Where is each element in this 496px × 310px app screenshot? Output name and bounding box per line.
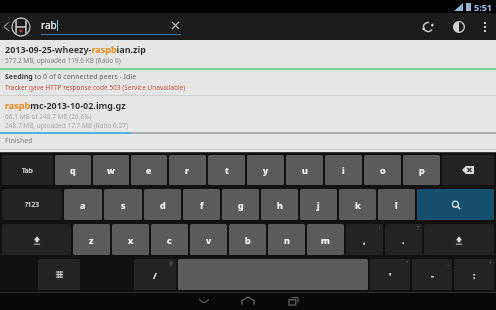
button[interactable]: Switch keyboard (38, 259, 80, 290)
button[interactable]: w (93, 155, 129, 185)
staticText: x (128, 234, 134, 246)
staticText: f (200, 199, 204, 211)
staticText: e (146, 164, 152, 176)
button[interactable]: @ (134, 259, 176, 290)
button[interactable]: l (378, 189, 415, 220)
staticText: ! (379, 225, 381, 232)
staticText: 2013-09-25-wheezy-raspbian.zip (5, 43, 146, 55)
button[interactable]: r (169, 155, 206, 185)
button[interactable]: q (55, 155, 91, 185)
button[interactable]: Shift (424, 224, 494, 255)
button[interactable]: o (364, 155, 401, 185)
staticText: g (238, 199, 244, 211)
staticText: : (473, 269, 476, 281)
button[interactable]: s (104, 189, 142, 220)
staticText: y (263, 164, 269, 176)
staticText: k (355, 199, 361, 211)
button[interactable]: d (144, 189, 181, 220)
button[interactable]: g (222, 189, 259, 220)
staticText: n (284, 234, 290, 246)
button[interactable]: “ (370, 259, 410, 290)
staticText: 248.7 MB, uploaded 17.7 MB (Ratio 0.27) (5, 121, 128, 130)
staticText: _ (447, 260, 450, 267)
staticText: s (121, 199, 126, 211)
button[interactable]: ? (385, 224, 422, 255)
staticText: Tab (22, 166, 33, 175)
button[interactable]: ?123 (2, 189, 62, 220)
staticText: m (321, 234, 330, 246)
staticText: t (225, 164, 229, 176)
button[interactable]: a (64, 189, 102, 220)
staticText: 5:51 (474, 1, 492, 13)
staticText: d (160, 199, 166, 211)
staticText: Seeding to 0 of 0 connected peers - Idle (5, 72, 137, 82)
staticText: j (317, 199, 320, 211)
staticText: q (70, 164, 76, 176)
button[interactable]: Refresh (412, 13, 444, 40)
staticText: ' (389, 269, 392, 281)
staticText: ?123 (25, 200, 39, 209)
button[interactable]: Alternative speed (444, 13, 474, 40)
staticText: . (402, 234, 405, 246)
button[interactable]: m (307, 224, 344, 255)
button[interactable]: Home (226, 292, 270, 310)
button[interactable]: y (247, 155, 284, 185)
staticText: a (80, 199, 86, 211)
button[interactable]: Clear query (169, 19, 181, 31)
staticText: c (167, 234, 172, 246)
button[interactable]: Shift (2, 224, 71, 255)
button[interactable]: f (183, 189, 220, 220)
button[interactable]: v (190, 224, 227, 255)
staticText: rab (41, 18, 57, 32)
staticText: Finished (5, 136, 33, 146)
button[interactable]: More options (474, 13, 496, 40)
button[interactable]: e (131, 155, 167, 185)
staticText: o (380, 164, 386, 176)
staticText: u (302, 164, 308, 176)
button[interactable]: _ (412, 259, 452, 290)
staticText: raspbmc-2013-10-02.img.gz (5, 99, 126, 111)
button[interactable]: raspbmc-2013-10-02.img.gz (0, 96, 496, 150)
button[interactable]: h (261, 189, 298, 220)
button[interactable]: z (73, 224, 110, 255)
staticText: h (277, 199, 283, 211)
staticText: Tracker gave HTTP response code 503 (Ser… (5, 83, 186, 92)
staticText: 66.1 MB of 248.7 MB (26.6%) (5, 112, 92, 121)
button[interactable]: k (339, 189, 376, 220)
button[interactable]: Recent apps (270, 292, 314, 310)
staticText: , (363, 234, 366, 246)
button[interactable]: c (151, 224, 188, 255)
staticText: r (185, 164, 190, 176)
staticText: w (107, 164, 115, 176)
button[interactable]: t (208, 155, 245, 185)
button[interactable]: p (403, 155, 440, 185)
button[interactable]: Hide keyboard (182, 292, 226, 310)
button[interactable]: Up (0, 13, 35, 40)
staticText: 577.2 MB, uploaded 119.6 KB (Ratio 0) (5, 56, 121, 65)
button[interactable]: u (286, 155, 323, 185)
staticText: @ (169, 260, 174, 267)
staticText: + (489, 260, 492, 267)
button[interactable]: j (300, 189, 337, 220)
button[interactable]: x (112, 224, 149, 255)
button[interactable]: 2013-09-25-wheezy-raspbian.zip (0, 40, 496, 96)
staticText: l (395, 199, 398, 211)
staticText: - (431, 269, 434, 281)
staticText: b (245, 234, 251, 246)
button[interactable]: i (325, 155, 362, 185)
staticText: ? (417, 225, 420, 232)
staticText: “ (406, 260, 408, 267)
staticText: i (342, 164, 345, 176)
button[interactable]: n (268, 224, 305, 255)
button[interactable]: Tab (2, 155, 53, 185)
button[interactable]: Delete (442, 155, 494, 185)
button[interactable]: b (229, 224, 266, 255)
staticText: z (89, 234, 94, 246)
staticText: / (153, 269, 157, 281)
button[interactable]: + (454, 259, 494, 290)
button[interactable]: ! (346, 224, 383, 255)
button[interactable]: Search (417, 189, 494, 220)
staticText: v (206, 234, 212, 246)
staticText: p (419, 164, 425, 176)
